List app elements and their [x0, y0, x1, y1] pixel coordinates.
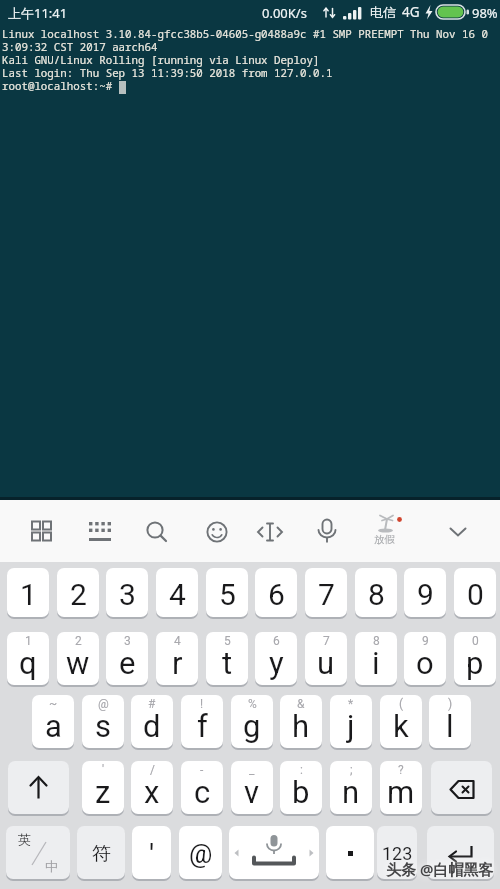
button[interactable]: 9: [404, 568, 446, 617]
button[interactable]: 0: [454, 568, 496, 617]
button[interactable]: c: [181, 761, 223, 814]
staticText: a: [45, 708, 62, 744]
staticText: 放假: [374, 533, 395, 546]
button[interactable]: 1: [7, 568, 49, 617]
button[interactable]: d: [131, 695, 173, 748]
button[interactable]: 123: [377, 826, 417, 879]
staticText: 1: [25, 634, 32, 648]
button[interactable]: 英: [6, 826, 70, 879]
staticText: ': [149, 837, 155, 872]
staticText: 7: [323, 634, 330, 648]
staticText: ): [448, 697, 453, 711]
button[interactable]: [427, 826, 494, 879]
staticText: w: [66, 645, 90, 681]
staticText: 0.00K/s: [262, 4, 307, 22]
button[interactable]: 6: [255, 568, 297, 617]
staticText: c: [194, 774, 211, 810]
staticText: n: [342, 774, 360, 810]
button[interactable]: y: [255, 632, 297, 685]
staticText: j: [347, 708, 355, 744]
staticText: 9: [417, 577, 434, 612]
staticText: 8: [373, 634, 380, 648]
staticText: 2: [75, 634, 82, 648]
button[interactable]: [436, 510, 480, 554]
button[interactable]: l: [429, 695, 471, 748]
button[interactable]: @: [179, 826, 222, 879]
staticText: z: [95, 774, 111, 810]
staticText: ;: [350, 763, 353, 777]
button[interactable]: [135, 510, 179, 554]
staticText: -: [200, 763, 204, 777]
button[interactable]: [305, 510, 349, 554]
staticText: y: [269, 645, 284, 681]
button[interactable]: 2: [57, 568, 99, 617]
staticText: 8: [368, 577, 385, 612]
button[interactable]: 5: [206, 568, 248, 617]
staticText: g: [243, 708, 261, 744]
button[interactable]: h: [280, 695, 322, 748]
staticText: :: [300, 763, 303, 777]
staticText: 5: [219, 577, 236, 612]
button[interactable]: u: [305, 632, 347, 685]
button[interactable]: q: [7, 632, 49, 685]
staticText: %: [248, 697, 257, 711]
button[interactable]: 7: [305, 568, 347, 617]
button[interactable]: 8: [355, 568, 397, 617]
button[interactable]: z: [82, 761, 124, 814]
button[interactable]: [78, 510, 122, 554]
button[interactable]: w: [57, 632, 99, 685]
button[interactable]: s: [82, 695, 124, 748]
button[interactable]: j: [330, 695, 372, 748]
staticText: p: [466, 645, 484, 681]
button[interactable]: f: [181, 695, 223, 748]
staticText: u: [317, 645, 335, 681]
button[interactable]: [229, 826, 319, 879]
button[interactable]: i: [355, 632, 397, 685]
button[interactable]: t: [206, 632, 248, 685]
button[interactable]: b: [280, 761, 322, 814]
button[interactable]: g: [231, 695, 273, 748]
button[interactable]: a: [32, 695, 74, 748]
button[interactable]: m: [380, 761, 422, 814]
staticText: @: [189, 839, 213, 869]
button[interactable]: x: [131, 761, 173, 814]
staticText: 9: [422, 634, 429, 648]
button[interactable]: n: [330, 761, 372, 814]
staticText: /: [150, 763, 155, 777]
button[interactable]: 放假: [363, 506, 407, 556]
staticText: 头条 @白帽黑客: [386, 859, 494, 879]
button[interactable]: ': [132, 826, 171, 879]
button[interactable]: [8, 761, 69, 814]
staticText: Linux localhost 3.10.84-gfcc38b5-04605-g…: [2, 26, 488, 93]
button[interactable]: o: [404, 632, 446, 685]
staticText: 上午11:41: [8, 4, 68, 22]
button[interactable]: k: [380, 695, 422, 748]
staticText: 3: [124, 634, 131, 648]
staticText: s: [95, 708, 111, 744]
staticText: i: [372, 645, 380, 681]
button[interactable]: [248, 510, 292, 554]
button[interactable]: r: [156, 632, 198, 685]
staticText: e: [119, 645, 136, 681]
staticText: 0: [467, 577, 484, 612]
staticText: 1: [20, 577, 37, 612]
button[interactable]: v: [231, 761, 273, 814]
staticText: t: [222, 645, 233, 681]
button[interactable]: [195, 510, 239, 554]
staticText: ': [102, 763, 105, 777]
button[interactable]: [431, 761, 492, 814]
staticText: 123: [382, 843, 413, 864]
button[interactable]: p: [454, 632, 496, 685]
button[interactable]: 符: [77, 826, 125, 879]
button[interactable]: 3: [106, 568, 148, 617]
button[interactable]: [19, 510, 63, 554]
staticText: h: [292, 708, 310, 744]
button[interactable]: 4: [156, 568, 198, 617]
staticText: _: [249, 763, 255, 777]
staticText: (: [399, 697, 404, 711]
staticText: 3: [119, 577, 136, 612]
staticText: !: [200, 697, 204, 711]
button[interactable]: e: [106, 632, 148, 685]
button[interactable]: [326, 826, 374, 879]
staticText: 符: [92, 842, 111, 866]
